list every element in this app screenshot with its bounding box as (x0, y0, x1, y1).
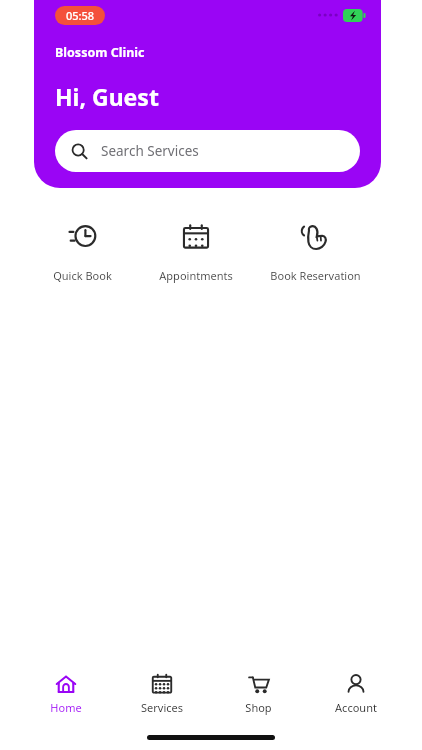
staticText: 05:58 (66, 8, 95, 23)
staticText: Account (335, 700, 377, 715)
button[interactable]: Quick Book (26, 216, 139, 287)
button[interactable]: Book Reservation (252, 216, 378, 287)
staticText: Quick Book (53, 268, 112, 283)
button[interactable]: Account (307, 668, 404, 719)
staticText: Search Services (101, 142, 199, 160)
staticText: Home (50, 700, 82, 715)
button[interactable]: Home (18, 668, 114, 719)
staticText: Blossom Clinic (55, 44, 145, 61)
button[interactable]: Shop (210, 668, 307, 719)
staticText: Appointments (159, 268, 233, 283)
staticText: Book Reservation (270, 268, 361, 283)
staticText: Services (141, 700, 183, 715)
staticText: Hi, Guest (55, 81, 159, 112)
button[interactable]: Appointments (139, 216, 252, 287)
button[interactable]: Search Services (55, 130, 360, 172)
button[interactable]: Services (114, 668, 210, 719)
staticText: Shop (245, 700, 272, 715)
